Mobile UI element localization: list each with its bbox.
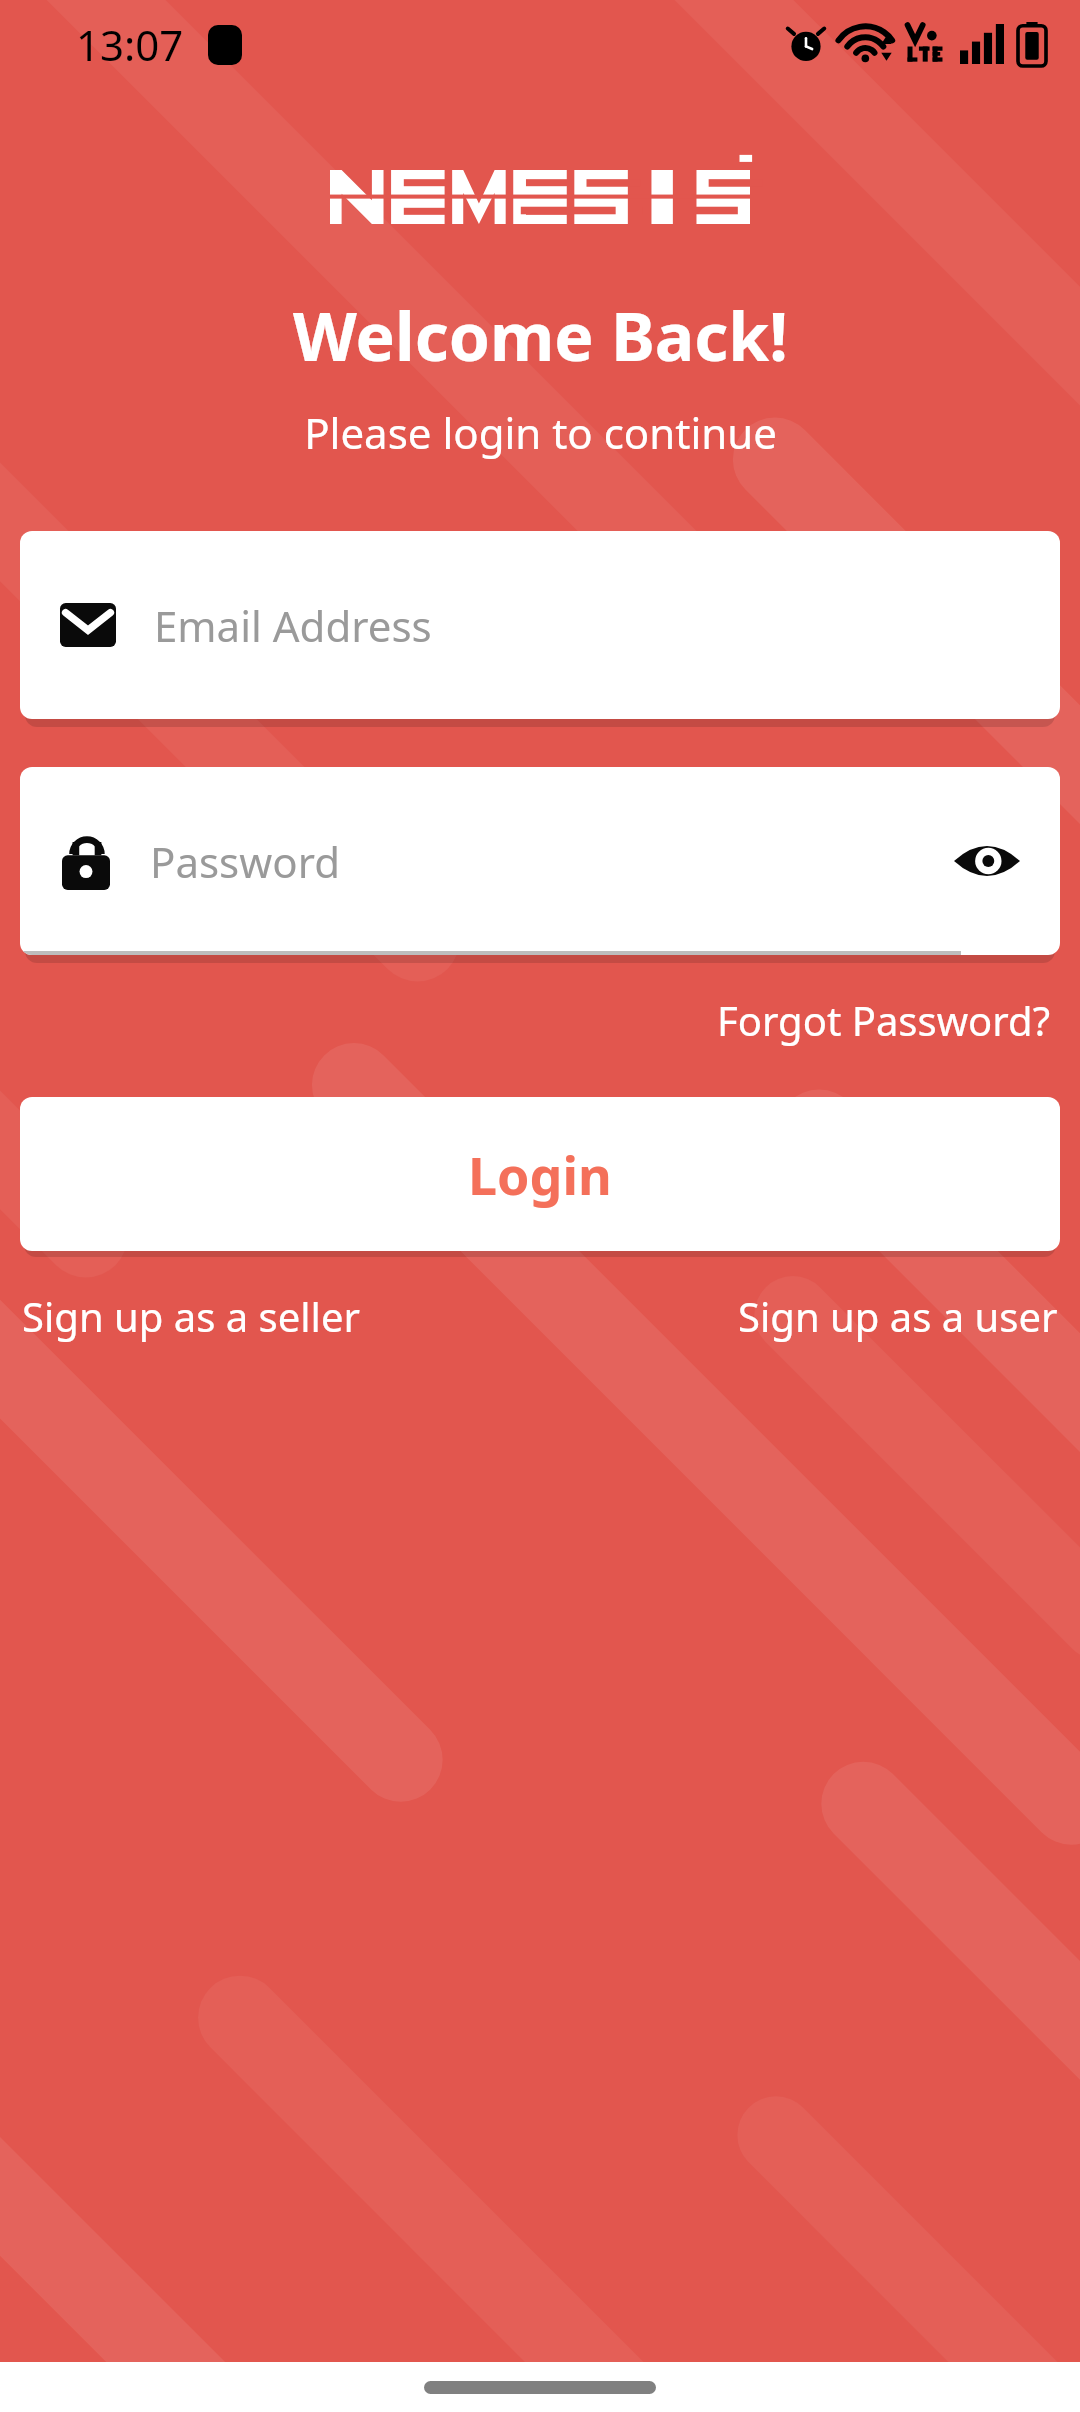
button[interactable]: Login [20, 1097, 1060, 1251]
button[interactable]: Email [20, 531, 1060, 719]
staticText: Login [468, 1139, 612, 1210]
button[interactable]: Sign up as a seller [22, 1279, 360, 1353]
button[interactable]: Show password [932, 806, 1042, 916]
staticText: Forgot Password? [717, 993, 1050, 1047]
button[interactable]: Forgot Password? [687, 985, 1080, 1055]
other: Email [60, 603, 116, 647]
staticText: 13:07 [76, 16, 184, 73]
staticText: Please login to continue [304, 404, 777, 461]
button[interactable]: Sign up as a user [738, 1279, 1058, 1353]
other: Password [62, 832, 110, 890]
staticText: Sign up as a user [738, 1289, 1058, 1343]
button[interactable]: Password [20, 767, 1060, 955]
staticText: Welcome Back! [293, 290, 788, 380]
staticText: Sign up as a seller [22, 1289, 360, 1343]
staticText: Password [150, 833, 340, 890]
staticText: Email Address [154, 597, 432, 654]
other: Nemesis logo [330, 170, 750, 224]
